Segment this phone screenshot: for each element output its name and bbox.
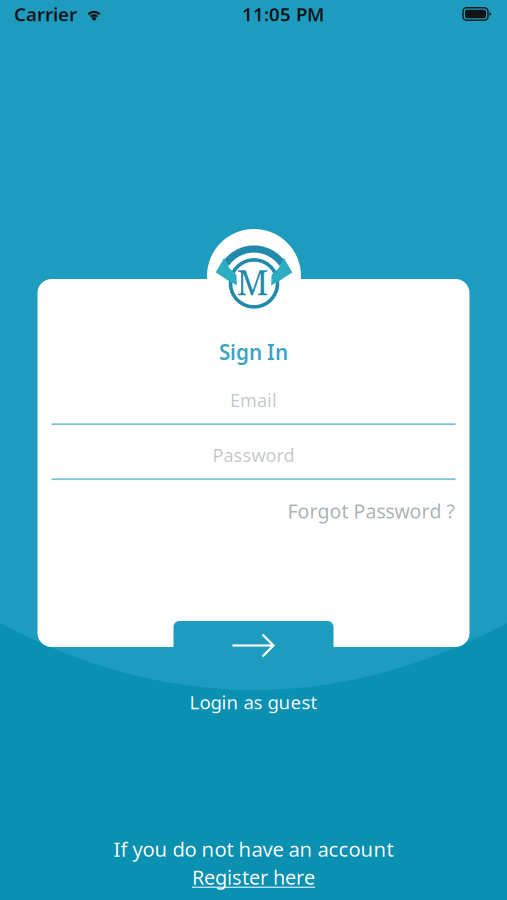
staticText: Password: [212, 443, 294, 467]
button[interactable]: Sign in: [173, 621, 333, 670]
staticText: Login as guest: [189, 689, 317, 715]
staticText: 11:05 PM: [242, 2, 324, 26]
button[interactable]: Login as guest: [143, 690, 363, 714]
button[interactable]: Forgot Password ?: [286, 500, 456, 522]
staticText: M: [236, 259, 268, 305]
staticText: Email: [230, 388, 277, 412]
staticText: Sign In: [219, 338, 288, 366]
staticText: Forgot Password ?: [287, 498, 454, 524]
staticText: Register here: [192, 863, 315, 891]
button[interactable]: Register here: [173, 864, 333, 890]
staticText: If you do not have an account: [113, 835, 393, 863]
staticText: Carrier: [14, 2, 77, 26]
